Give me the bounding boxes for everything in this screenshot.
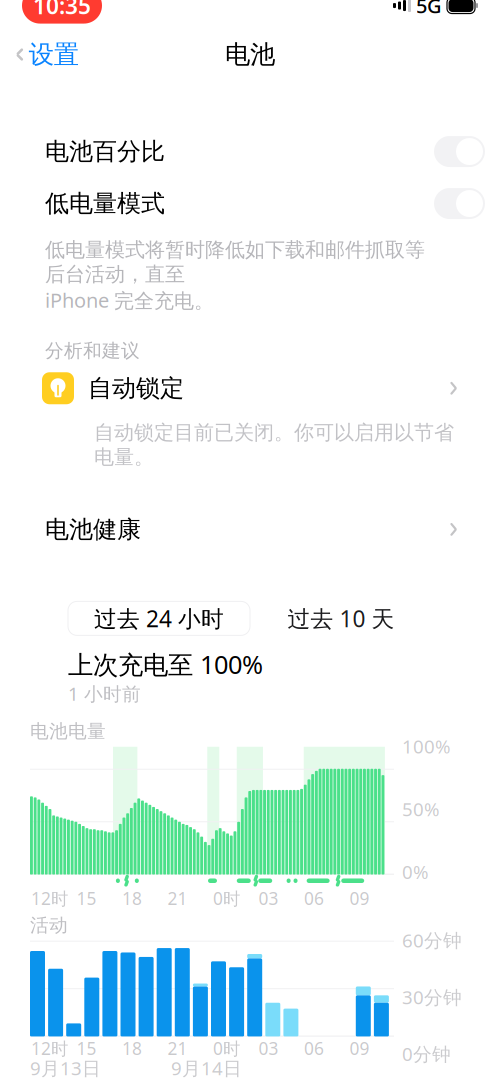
- staticText: 18: [122, 1037, 142, 1060]
- staticText: 电池健康: [45, 515, 141, 544]
- staticText: 0时: [213, 1037, 240, 1060]
- staticText: 自动锁定: [88, 373, 184, 403]
- staticText: 12时: [31, 887, 68, 910]
- staticText: 低电量模式: [45, 189, 165, 218]
- button[interactable]: 设置: [14, 33, 81, 76]
- staticText: 1 小时前: [68, 681, 141, 706]
- staticText: 06: [304, 887, 324, 910]
- staticText: 50%: [402, 797, 440, 821]
- staticText: 5G: [416, 0, 442, 19]
- button[interactable]: 电池健康: [0, 503, 500, 555]
- staticText: 09: [349, 1037, 369, 1060]
- staticText: 9月13日: [30, 1056, 101, 1080]
- staticText: 低电量模式将暂时降低如下载和邮件抓取等后台活动，直至 iPhone 完全充电。: [45, 237, 425, 313]
- staticText: 15: [76, 1037, 96, 1060]
- staticText: 15: [76, 887, 96, 910]
- staticText: 过去 10 天: [287, 603, 394, 633]
- staticText: 30分钟: [402, 984, 462, 1009]
- staticText: 60分钟: [402, 928, 462, 952]
- staticText: 电池电量: [30, 720, 106, 743]
- staticText: 设置: [29, 39, 79, 70]
- staticText: 10:35: [33, 0, 91, 21]
- staticText: 0%: [402, 859, 429, 884]
- staticText: 03: [258, 887, 278, 910]
- button[interactable]: 过去 10 天: [250, 601, 432, 635]
- staticText: 0时: [213, 887, 240, 910]
- staticText: 电池百分比: [45, 137, 165, 166]
- button[interactable]: 自动锁定: [0, 362, 500, 414]
- staticText: 09: [349, 887, 369, 910]
- staticText: 21: [167, 1037, 187, 1060]
- staticText: 06: [304, 1037, 324, 1060]
- staticText: 12时: [31, 1037, 68, 1060]
- staticText: 电池: [225, 39, 275, 70]
- staticText: 活动: [30, 914, 68, 937]
- staticText: 03: [258, 1037, 278, 1060]
- button[interactable]: 电池百分比: [0, 125, 500, 177]
- staticText: 21: [167, 887, 187, 910]
- staticText: 18: [122, 887, 142, 910]
- staticText: 100%: [402, 734, 451, 759]
- staticText: 上次充电至 100%: [68, 647, 263, 681]
- staticText: 9月14日: [171, 1056, 242, 1080]
- button[interactable]: 低电量模式: [0, 177, 500, 229]
- staticText: 自动锁定目前已关闭。你可以启用以节省电量。: [94, 420, 454, 469]
- staticText: 0分钟: [402, 1041, 451, 1066]
- staticText: 分析和建议: [45, 339, 140, 362]
- staticText: 过去 24 小时: [94, 603, 224, 633]
- button[interactable]: 过去 24 小时: [68, 601, 250, 635]
